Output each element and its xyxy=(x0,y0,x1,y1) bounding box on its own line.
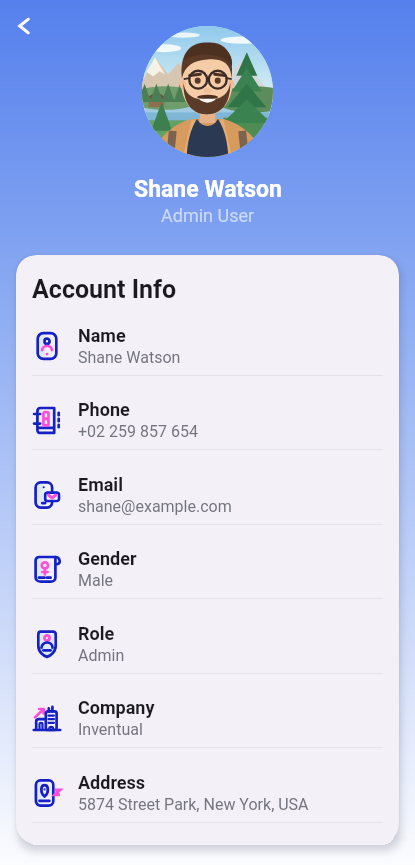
staticText: shane@example.com xyxy=(78,497,232,516)
staticText: Account Info xyxy=(32,275,177,304)
button[interactable]: Name xyxy=(32,317,383,376)
staticText: Male xyxy=(78,571,114,590)
staticText: Admin xyxy=(78,646,125,665)
staticText: Shane Watson xyxy=(78,348,181,367)
button[interactable]: Phone xyxy=(32,391,383,450)
staticText: Gender xyxy=(78,548,137,569)
button[interactable]: Back xyxy=(6,8,42,44)
staticText: Phone xyxy=(78,399,130,420)
staticText: Shane Watson xyxy=(134,176,282,203)
staticText: Inventual xyxy=(78,720,143,739)
button[interactable]: Role xyxy=(32,615,383,674)
button[interactable]: Gender xyxy=(32,540,383,599)
staticText: Address xyxy=(78,772,146,793)
staticText: Name xyxy=(78,325,126,346)
button[interactable]: Company xyxy=(32,689,383,748)
staticText: Email xyxy=(78,474,123,495)
staticText: Role xyxy=(78,623,115,644)
staticText: Admin User xyxy=(161,205,255,226)
staticText: Company xyxy=(78,697,155,718)
staticText: +02 259 857 654 xyxy=(78,422,198,441)
staticText: 5874 Street Park, New York, USA xyxy=(78,795,309,814)
button[interactable]: Email xyxy=(32,466,383,525)
button[interactable]: Address xyxy=(32,764,383,823)
